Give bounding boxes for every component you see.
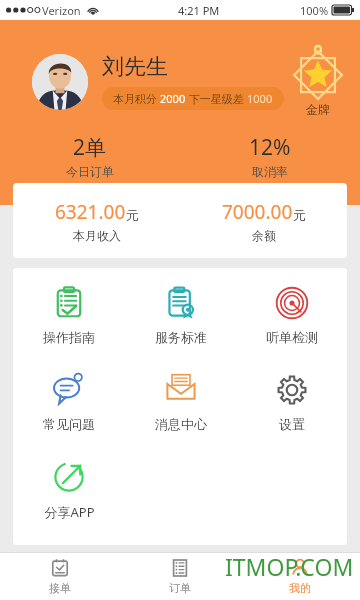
button[interactable]: 常见问题 (13, 371, 125, 434)
staticText: 下一星级差 (186, 91, 247, 106)
button[interactable]: 听单检测 (236, 284, 347, 347)
button[interactable]: 2单 (0, 133, 180, 179)
staticText: Verizon (42, 3, 81, 18)
button[interactable]: 6321.00 (13, 199, 180, 243)
staticText: 常见问题 (43, 416, 95, 432)
staticText: 我的 (289, 581, 311, 595)
staticText: 消息中心 (155, 416, 207, 432)
button[interactable]: Gold medal level (290, 46, 346, 117)
staticText: 订单 (169, 581, 191, 595)
staticText: 元 (126, 207, 139, 223)
staticText: 分享APP (44, 503, 95, 521)
button[interactable]: 12% (180, 133, 360, 179)
button[interactable]: 服务标准 (125, 284, 236, 347)
staticText: 取消率 (252, 164, 288, 179)
staticText: 余额 (252, 228, 276, 243)
button[interactable]: 操作指南 (13, 284, 125, 347)
staticText: 1000 (247, 91, 273, 106)
button[interactable]: Profile photo (32, 54, 88, 110)
staticText: 今日订单 (66, 164, 114, 179)
staticText: 金牌 (306, 102, 330, 117)
staticText: 接单 (49, 581, 71, 595)
staticText: 7000.00 (222, 199, 293, 225)
button[interactable]: 订单 (120, 553, 240, 600)
button[interactable]: 消息中心 (125, 371, 236, 434)
staticText: 本月收入 (73, 228, 121, 243)
button[interactable]: 本月积分 (102, 87, 284, 110)
staticText: 6321.00 (55, 199, 126, 225)
staticText: 设置 (279, 416, 305, 432)
button[interactable]: 接单 (0, 553, 120, 600)
staticText: 12% (249, 133, 291, 162)
staticText: 100% (300, 3, 329, 18)
staticText: 2000 (160, 91, 186, 106)
staticText: 本月积分 (113, 91, 160, 106)
staticText: 元 (293, 207, 306, 223)
staticText: 服务标准 (155, 329, 207, 345)
staticText: 操作指南 (43, 329, 95, 345)
button[interactable]: 我的 (240, 553, 360, 600)
staticText: 4:21 PM (178, 3, 220, 18)
button[interactable]: 7000.00 (180, 199, 347, 243)
staticText: 2单 (73, 133, 107, 162)
staticText: 刘先生 (102, 53, 168, 81)
button[interactable]: 设置 (236, 371, 347, 434)
button[interactable]: 分享APP (13, 458, 125, 523)
staticText: 听单检测 (266, 329, 318, 345)
staticText: ITMOP.COM (225, 551, 354, 582)
